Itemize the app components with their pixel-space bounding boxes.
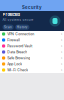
button[interactable]: Data Breach <box>0 49 64 55</box>
staticText: App Lock <box>7 62 22 66</box>
staticText: › <box>61 50 62 54</box>
staticText: Firewall <box>7 38 20 42</box>
staticText: › <box>61 62 62 66</box>
staticText: VPN Connection <box>7 32 34 36</box>
button[interactable]: VPN Connection <box>0 31 64 37</box>
button[interactable]: Firewall <box>0 37 64 43</box>
staticText: History <box>17 25 28 29</box>
staticText: › <box>61 38 62 42</box>
staticText: › <box>61 68 62 72</box>
button[interactable]: Safe Browsing <box>0 55 64 61</box>
staticText: Safe Browsing <box>7 56 30 60</box>
staticText: Wi-Fi Check <box>7 68 28 72</box>
staticText: › <box>61 56 62 60</box>
staticText: All systems secure <box>2 18 33 22</box>
staticText: Password Vault <box>7 44 32 48</box>
staticText: Data Breach <box>7 50 27 54</box>
staticText: › <box>61 44 62 48</box>
button[interactable]: App Lock <box>0 61 64 67</box>
button[interactable]: Wi-Fi Check <box>0 67 64 73</box>
staticText: › <box>61 32 62 36</box>
button[interactable]: Password Vault <box>0 43 64 49</box>
staticText: Scan <box>4 25 12 29</box>
staticText: Protected <box>2 12 20 17</box>
staticText: Security <box>22 5 42 10</box>
